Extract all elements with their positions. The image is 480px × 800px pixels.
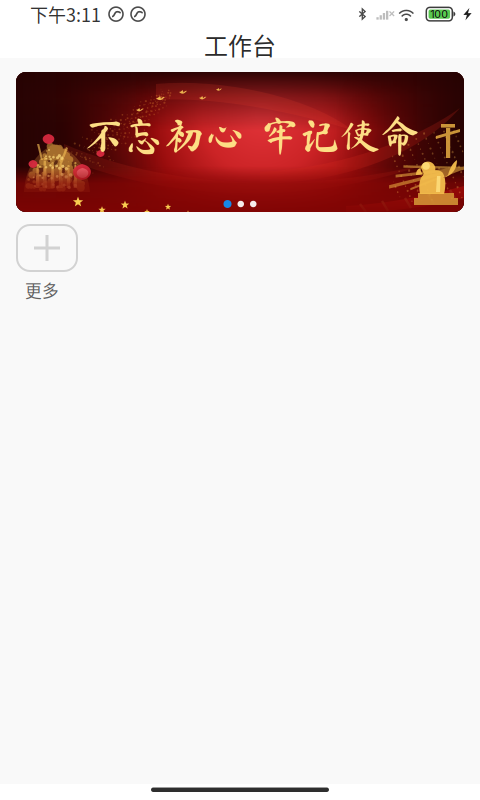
staticText: 100	[430, 8, 448, 21]
staticText: 更多	[25, 278, 59, 302]
staticText: 工作台	[204, 27, 276, 62]
staticText: 下午3:11	[30, 1, 101, 27]
staticText: 不忘初心 牢记使命	[84, 115, 420, 155]
button[interactable]: 更多	[4, 225, 90, 302]
